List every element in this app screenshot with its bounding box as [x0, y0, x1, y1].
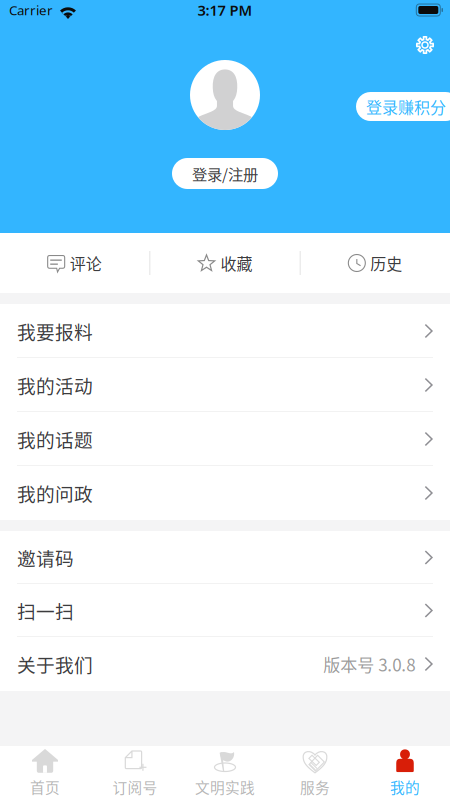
button[interactable]: 我的活动 [0, 358, 450, 412]
button[interactable]: 历史 [301, 233, 450, 293]
button[interactable]: 收藏 [150, 233, 300, 293]
staticText: 服务 [300, 776, 330, 797]
button[interactable]: Settings [409, 30, 441, 60]
button[interactable]: 登录/注册 [172, 158, 278, 189]
button[interactable]: 我要报料 [0, 304, 450, 358]
staticText: 关于我们 [17, 650, 93, 677]
button[interactable]: 服务 [270, 745, 360, 800]
button[interactable]: 首页 [0, 745, 90, 800]
staticText: 我的问政 [17, 479, 93, 506]
staticText: 我要报料 [17, 317, 93, 344]
button[interactable]: 订阅号 [90, 745, 180, 800]
staticText: 扫一扫 [17, 597, 74, 624]
staticText: 3:17 PM [197, 0, 252, 20]
staticText: 收藏 [220, 251, 252, 275]
staticText: 版本号 3.0.8 [323, 652, 415, 676]
button[interactable]: 我的话题 [0, 412, 450, 466]
button[interactable]: 邀请码 [0, 531, 450, 584]
button[interactable]: 登录赚积分 [356, 92, 450, 121]
staticText: 登录/注册 [192, 162, 258, 185]
staticText: 我的 [390, 776, 420, 797]
staticText: 我的活动 [17, 371, 93, 398]
button[interactable]: 我的 [360, 745, 450, 800]
staticText: 首页 [30, 776, 60, 797]
staticText: 登录赚积分 [366, 95, 446, 118]
button[interactable]: 我的问政 [0, 466, 450, 520]
staticText: 评论 [70, 251, 102, 275]
button[interactable]: 关于我们 [0, 637, 450, 691]
staticText: 历史 [370, 251, 402, 275]
staticText: 订阅号 [112, 776, 157, 797]
button[interactable]: 扫一扫 [0, 584, 450, 637]
button[interactable]: 评论 [0, 233, 149, 293]
button[interactable]: 文明实践 [180, 745, 270, 800]
staticText: Carrier [9, 1, 53, 19]
staticText: 我的话题 [17, 425, 93, 452]
staticText: 文明实践 [195, 776, 255, 797]
staticText: 邀请码 [17, 544, 74, 571]
